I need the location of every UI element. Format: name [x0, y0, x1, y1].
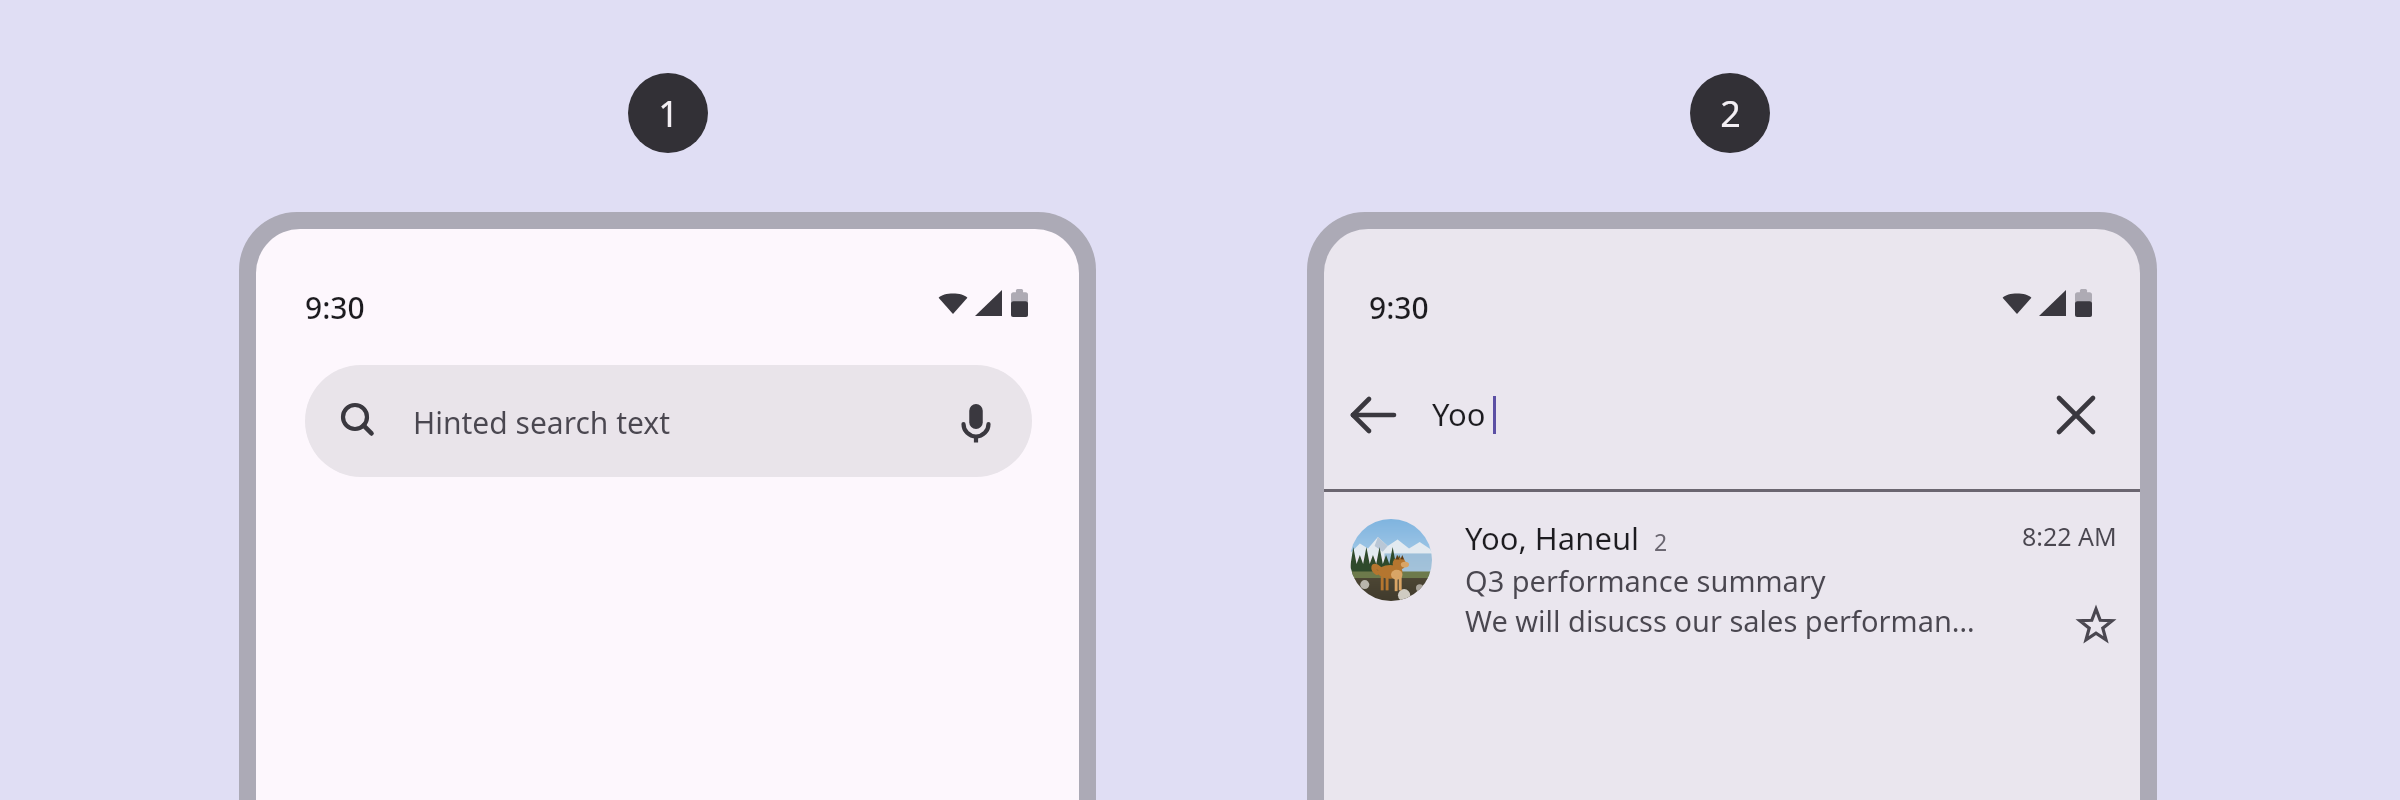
button[interactable]: Clear search	[2050, 389, 2102, 441]
button[interactable]: Yoo, Haneul	[1324, 491, 2140, 651]
button[interactable]: Star	[2074, 603, 2118, 647]
staticText: Yoo	[1432, 393, 1486, 435]
button[interactable]: Back	[1348, 389, 1400, 441]
staticText: 9:30	[1369, 287, 1429, 328]
other: Search	[331, 395, 383, 447]
staticText: 9:30	[305, 287, 365, 328]
button[interactable]: Search	[305, 365, 1032, 477]
staticText: 2	[1654, 526, 1668, 557]
button[interactable]: 1	[628, 73, 708, 153]
button[interactable]: 2	[1690, 73, 1770, 153]
staticText: 2	[1720, 89, 1741, 138]
staticText: Q3 performance summary	[1465, 561, 1826, 600]
staticText: Yoo, Haneul	[1465, 517, 1640, 559]
staticText: 1	[658, 89, 679, 138]
staticText: Hinted search text	[413, 402, 671, 443]
staticText: 8:22 AM	[2022, 519, 2117, 553]
button[interactable]: Voice search	[950, 395, 1002, 447]
staticText: We will disucss our sales performan…	[1465, 601, 1975, 640]
